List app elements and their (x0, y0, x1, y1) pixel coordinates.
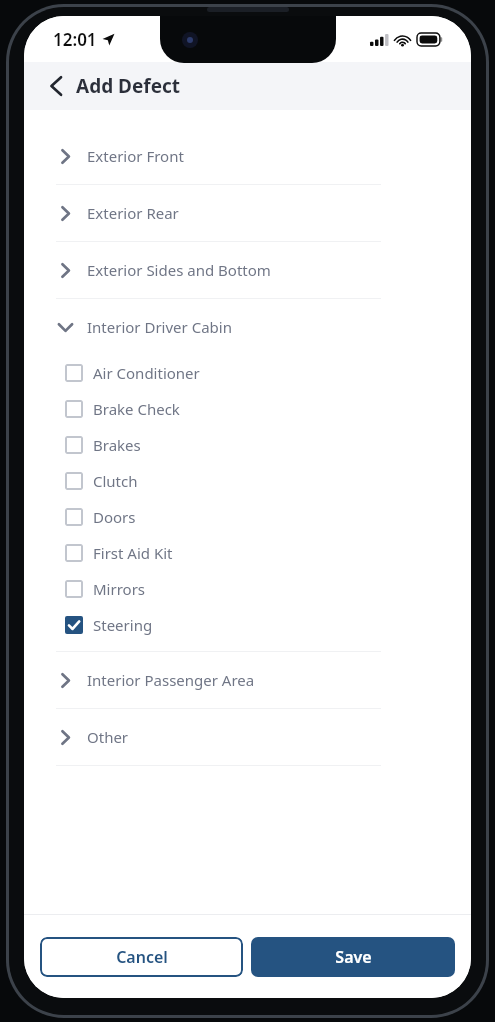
button[interactable]: Back (36, 66, 76, 106)
staticText: Clutch (93, 471, 138, 491)
button[interactable]: Brake Check (24, 391, 471, 427)
staticText: Cancel (116, 946, 168, 968)
staticText: Brake Check (93, 399, 180, 419)
button[interactable]: Cancel (40, 937, 243, 977)
staticText: Exterior Front (87, 146, 184, 166)
button[interactable]: Doors (24, 499, 471, 535)
button[interactable]: Other (24, 709, 471, 765)
staticText: Add Defect (76, 73, 181, 99)
staticText: Brakes (93, 435, 141, 455)
button[interactable]: Interior Driver Cabin (24, 299, 471, 355)
staticText: Air Conditioner (93, 363, 200, 383)
staticText: Exterior Rear (87, 203, 179, 223)
staticText: Save (335, 946, 372, 968)
button[interactable]: Exterior Rear (24, 185, 471, 241)
button[interactable]: Mirrors (24, 571, 471, 607)
staticText: Doors (93, 507, 136, 527)
button[interactable]: Exterior Sides and Bottom (24, 242, 471, 298)
button[interactable]: Interior Passenger Area (24, 652, 471, 708)
staticText: Mirrors (93, 579, 146, 599)
button[interactable]: Save (251, 937, 455, 977)
staticText: First Aid Kit (93, 543, 173, 563)
button[interactable]: Brakes (24, 427, 471, 463)
staticText: Exterior Sides and Bottom (87, 260, 271, 280)
button[interactable]: Air Conditioner (24, 355, 471, 391)
staticText: Interior Passenger Area (87, 670, 255, 690)
button[interactable]: Steering (24, 607, 471, 643)
button[interactable]: Clutch (24, 463, 471, 499)
staticText: Interior Driver Cabin (87, 317, 232, 337)
button[interactable]: Exterior Front (24, 128, 471, 184)
staticText: Other (87, 727, 129, 747)
staticText: 12:01 (53, 28, 97, 51)
staticText: Steering (93, 615, 153, 635)
button[interactable]: First Aid Kit (24, 535, 471, 571)
